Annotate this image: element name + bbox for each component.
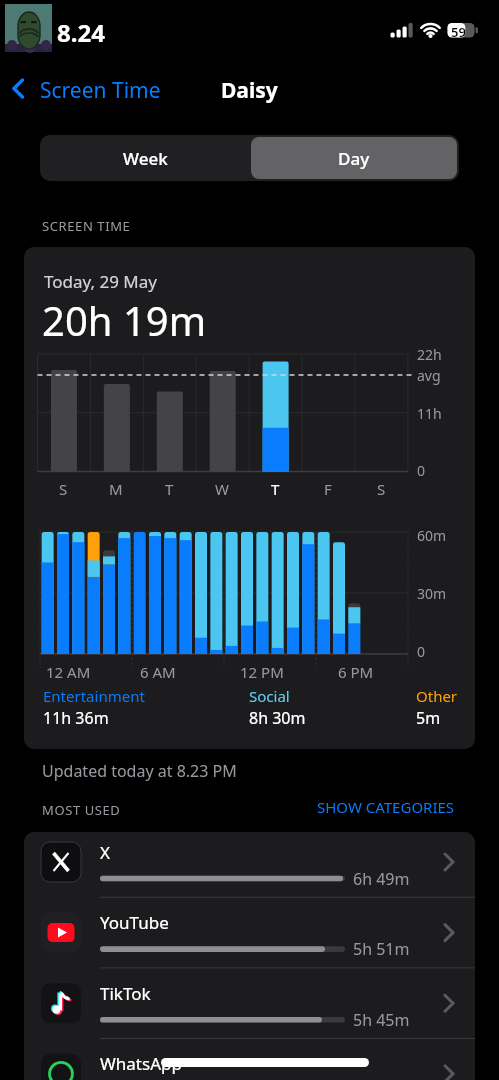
button[interactable] bbox=[24, 973, 475, 1043]
staticText: Day bbox=[338, 147, 370, 170]
staticText: W bbox=[215, 479, 229, 499]
staticText: Today, 29 May bbox=[44, 270, 157, 293]
staticText: 12 PM bbox=[240, 662, 284, 682]
staticText: Updated today at 8.23 PM bbox=[42, 760, 237, 782]
button[interactable] bbox=[24, 832, 475, 902]
staticText: M bbox=[109, 479, 123, 499]
staticText: 0 bbox=[417, 642, 426, 661]
staticText: Entertainment bbox=[43, 686, 145, 706]
staticText: TikTok bbox=[100, 982, 151, 1005]
staticText: 20h 19m bbox=[42, 293, 207, 347]
staticText: SHOW CATEGORIES bbox=[317, 797, 455, 817]
button[interactable] bbox=[8, 70, 188, 106]
staticText: 60m bbox=[417, 526, 447, 545]
staticText: Social bbox=[249, 686, 290, 706]
button[interactable]: SHOW CATEGORIES bbox=[280, 797, 455, 817]
staticText: 8.24 bbox=[57, 16, 105, 49]
staticText: Week bbox=[123, 147, 168, 170]
staticText: Screen Time bbox=[40, 76, 161, 105]
staticText: X bbox=[100, 841, 110, 864]
staticText: S bbox=[377, 479, 386, 499]
staticText: F bbox=[324, 479, 332, 499]
staticText: 59 bbox=[451, 23, 466, 41]
staticText: 8h 30m bbox=[249, 707, 306, 729]
staticText: 30m bbox=[417, 584, 447, 603]
staticText: T bbox=[271, 479, 280, 499]
staticText: avg bbox=[417, 366, 441, 385]
staticText: 6 PM bbox=[338, 662, 374, 682]
staticText: 12 AM bbox=[46, 662, 91, 682]
button[interactable]: Week bbox=[40, 135, 250, 181]
staticText: T bbox=[165, 479, 174, 499]
staticText: SCREEN TIME bbox=[42, 217, 131, 235]
staticText: S bbox=[59, 479, 68, 499]
staticText: Other bbox=[416, 686, 458, 706]
staticText: 5m bbox=[416, 707, 441, 729]
button[interactable] bbox=[24, 902, 475, 972]
staticText: 6h 49m bbox=[353, 868, 410, 890]
staticText: Daisy bbox=[221, 76, 278, 105]
staticText: 5h 51m bbox=[353, 938, 410, 960]
staticText: 11h 36m bbox=[43, 707, 109, 729]
staticText: 11h bbox=[417, 404, 442, 423]
staticText: 0 bbox=[417, 461, 426, 480]
staticText: 22h bbox=[417, 345, 442, 364]
button[interactable] bbox=[24, 1043, 475, 1080]
button[interactable]: Day bbox=[251, 137, 457, 179]
staticText: YouTube bbox=[100, 911, 169, 934]
staticText: 5h 45m bbox=[353, 1009, 410, 1031]
staticText: MOST USED bbox=[42, 801, 121, 819]
staticText: WhatsApp bbox=[100, 1052, 182, 1075]
staticText: 6 AM bbox=[140, 662, 176, 682]
